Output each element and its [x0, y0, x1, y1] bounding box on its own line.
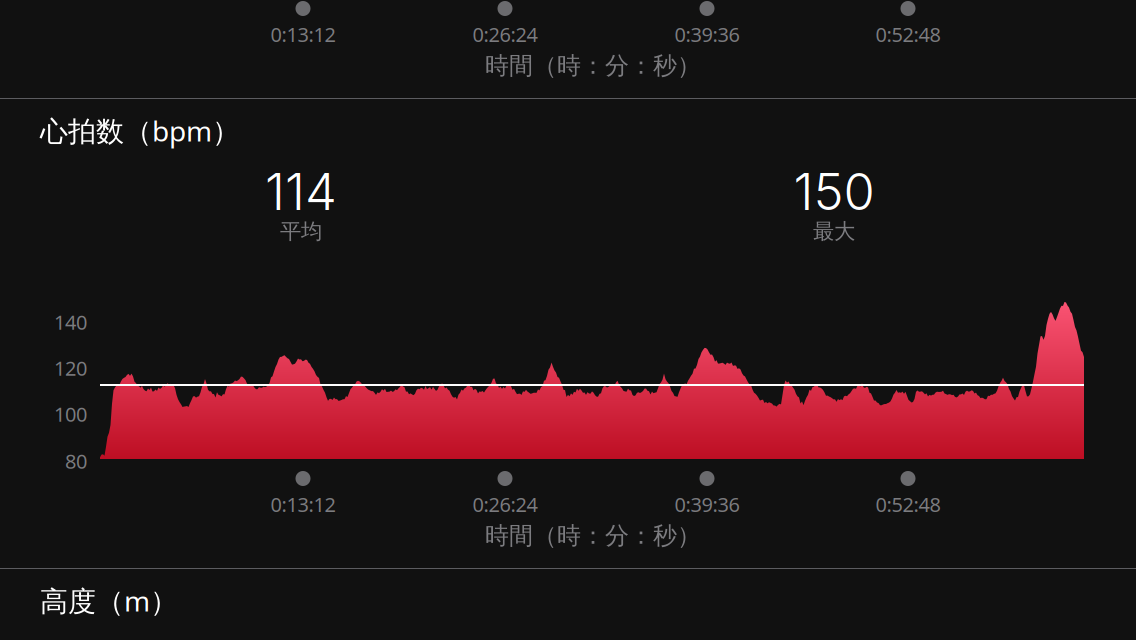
staticText: 0:26:24 — [472, 21, 537, 48]
staticText: 最大 — [813, 218, 855, 244]
staticText: 0:26:24 — [472, 491, 537, 518]
staticText: 0:13:12 — [270, 491, 335, 518]
staticText: 平均 — [280, 218, 322, 244]
button[interactable]: ペースのグラフ — [0, 0, 1136, 98]
button[interactable]: 高度のグラフ — [0, 568, 1136, 640]
staticText: 時間（時：分：秒） — [485, 51, 701, 80]
staticText: 0:39:36 — [674, 21, 739, 48]
staticText: 時間（時：分：秒） — [485, 521, 701, 550]
staticText: 心拍数（bpm） — [40, 112, 240, 149]
staticText: 0:13:12 — [270, 21, 335, 48]
staticText: 100 — [54, 401, 87, 427]
staticText: 0:52:48 — [875, 491, 940, 518]
staticText: 高度（m） — [40, 582, 178, 619]
staticText: 0:52:48 — [875, 21, 940, 48]
staticText: 120 — [54, 355, 87, 381]
staticText: 114 — [265, 161, 337, 222]
staticText: 140 — [54, 309, 87, 335]
staticText: 0:39:36 — [674, 491, 739, 518]
staticText: 150 — [793, 161, 874, 222]
staticText: 80 — [65, 448, 87, 474]
button[interactable]: 心拍数のグラフ — [0, 98, 1136, 568]
